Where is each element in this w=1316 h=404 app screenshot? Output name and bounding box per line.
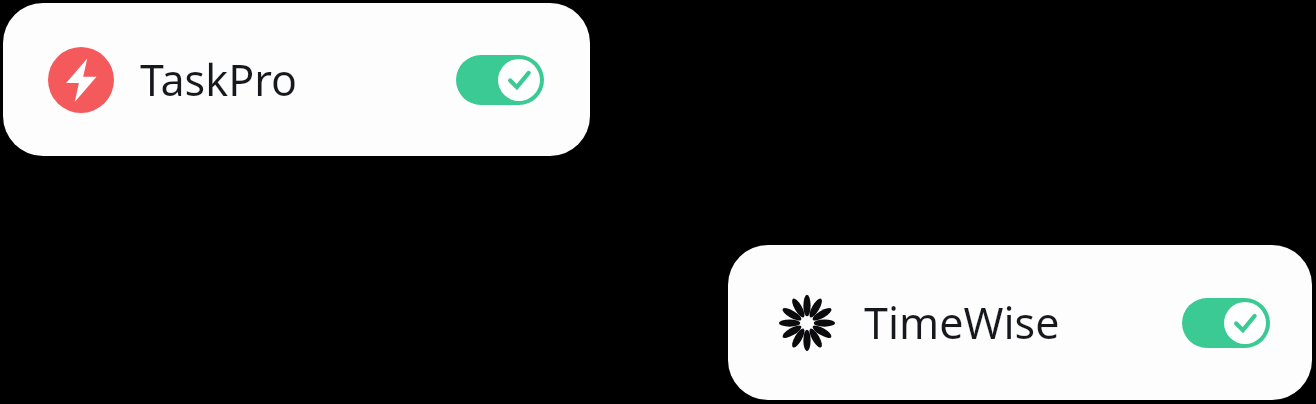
button[interactable]: TimeWise [728, 245, 1312, 400]
staticText: TaskPro [140, 50, 298, 109]
button[interactable]: Toggle TaskPro [456, 55, 544, 105]
button[interactable]: Toggle TimeWise [1182, 298, 1270, 348]
button[interactable]: TaskPro [3, 3, 590, 156]
staticText: TimeWise [864, 293, 1060, 352]
